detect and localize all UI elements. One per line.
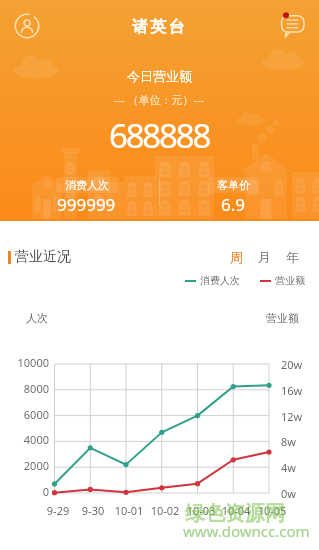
staticText: 营业额 [275,274,305,287]
staticText: 消费人次 [200,274,240,287]
staticText: 周 [230,249,243,265]
staticText: www.downcc.com [183,521,310,541]
button[interactable]: 营业额 [260,274,305,287]
staticText: 10-03 [183,503,219,518]
staticText: 人次 [26,311,48,325]
staticText: 10-05 [254,503,290,518]
staticText: 10-04 [218,503,254,518]
staticText: 4w [281,460,319,475]
button[interactable]: Profile [10,9,44,43]
staticText: 营业近况 [15,248,71,266]
staticText: 9-30 [75,503,111,518]
staticText: 10000 [0,355,49,370]
staticText: 0w [281,486,319,501]
button[interactable]: 年 [284,247,301,267]
staticText: 诸英台 [132,17,187,37]
staticText: 10-01 [111,503,147,518]
staticText: 9-29 [40,503,76,518]
staticText: 10-02 [147,503,183,518]
staticText: 客单价 [217,178,250,192]
staticText: 月 [258,249,271,265]
button[interactable]: Messages [278,9,308,39]
staticText: 999999 [57,193,116,216]
button[interactable]: 消费人次 [185,274,240,287]
staticText: --- （单位：元）--- [114,92,205,107]
staticText: 0 [0,484,49,499]
staticText: 16w [281,383,319,398]
staticText: 8000 [0,381,49,396]
button[interactable]: 月 [256,247,273,267]
staticText: 12w [281,409,319,424]
button[interactable]: 消费人次 [36,177,137,216]
staticText: 6000 [0,407,49,422]
button[interactable]: 周 [228,247,245,267]
staticText: 绿色资源网 [185,501,285,526]
staticText: 4000 [0,432,49,447]
staticText: 20w [281,357,319,372]
staticText: 2000 [0,458,49,473]
staticText: 8w [281,434,319,449]
staticText: 6.9 [221,193,246,216]
staticText: 消费人次 [65,178,109,192]
staticText: 年 [286,249,299,265]
staticText: 今日营业额 [127,68,192,84]
button[interactable]: 客单价 [183,177,284,216]
button[interactable]: 营业近况 [8,248,71,266]
staticText: 688888 [109,113,210,158]
staticText: 营业额 [266,311,299,325]
